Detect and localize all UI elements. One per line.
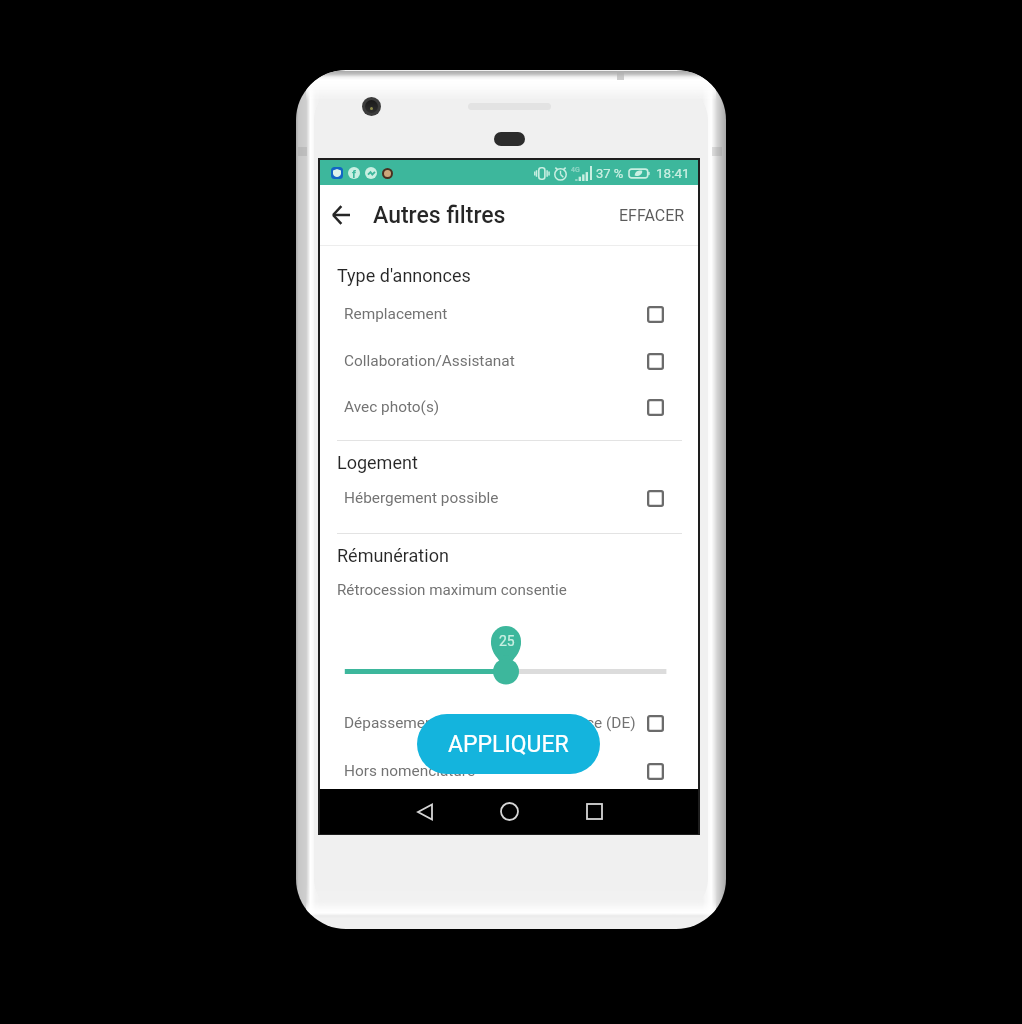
staticText: Remplacement — [344, 305, 448, 323]
staticText: 4G — [571, 166, 580, 174]
staticText: Hors nomenclature — [344, 762, 476, 780]
staticText: Rémunération — [337, 545, 449, 566]
button[interactable]: Recent apps — [572, 789, 616, 834]
staticText: Autres filtres — [373, 202, 506, 229]
button[interactable]: Home — [487, 789, 531, 834]
button[interactable]: Remplacement — [320, 291, 698, 337]
staticText: Dépassement d'honoraires d'exigence (DE) — [344, 714, 636, 732]
button[interactable]: Rétrocession maximum, 25 % — [320, 621, 698, 691]
staticText: Hébergement possible — [344, 489, 499, 507]
staticText: 18:41 — [656, 165, 690, 181]
button[interactable]: Avec photo(s) — [320, 384, 698, 430]
staticText: Type d'annonces — [337, 265, 471, 286]
staticText: APPLIQUER — [448, 731, 569, 758]
button[interactable]: Hors nomenclature — [320, 748, 698, 794]
staticText: Logement — [337, 452, 418, 473]
button[interactable]: Hébergement possible — [320, 475, 698, 521]
staticText: 37 % — [596, 166, 624, 181]
staticText: EFFACER — [619, 206, 685, 225]
button[interactable]: APPLIQUER — [417, 714, 600, 774]
button[interactable]: Dépassement d'honoraires d'exigence (DE) — [320, 700, 698, 746]
staticText: Avec photo(s) — [344, 398, 440, 416]
button[interactable]: Back — [319, 191, 363, 239]
button[interactable]: EFFACER — [606, 185, 698, 245]
staticText: Collaboration/Assistanat — [344, 352, 515, 370]
staticText: Rétrocession maximum consentie — [337, 581, 567, 599]
button[interactable]: Collaboration/Assistanat — [320, 338, 698, 384]
button[interactable]: Back — [403, 789, 447, 834]
staticText: f — [352, 168, 356, 179]
staticText: 25 — [499, 633, 515, 649]
